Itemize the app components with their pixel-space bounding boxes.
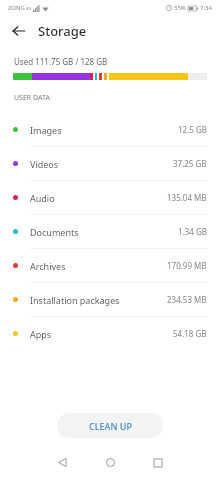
staticText: ZONG xyxy=(8,4,25,12)
button[interactable]: Installation packages xyxy=(0,283,220,316)
staticText: Storage xyxy=(38,22,87,40)
staticText: 1.34 GB xyxy=(178,226,207,237)
staticText: 135.04 MB xyxy=(167,192,207,203)
staticText: 54.18 GB xyxy=(173,328,207,339)
staticText: 234.53 MB xyxy=(167,294,207,305)
button[interactable]: Images xyxy=(0,113,220,146)
button[interactable]: Home xyxy=(93,450,127,475)
button[interactable]: Back xyxy=(45,450,79,475)
button[interactable]: Videos xyxy=(0,147,220,180)
staticText: USER DATA xyxy=(14,93,50,103)
button[interactable]: Documents xyxy=(0,215,220,248)
staticText: 55% xyxy=(174,4,186,12)
staticText: Apps xyxy=(30,328,52,340)
staticText: 170.99 MB xyxy=(167,260,207,271)
staticText: Audio xyxy=(30,192,55,204)
staticText: Archives xyxy=(30,260,66,272)
button[interactable]: Recent apps xyxy=(141,450,175,475)
staticText: 7:34 xyxy=(200,4,212,12)
button[interactable]: Archives xyxy=(0,249,220,282)
staticText: 12.5 GB xyxy=(178,124,207,135)
staticText: 37.25 GB xyxy=(173,158,207,169)
staticText: Used 111.75 GB / 128 GB xyxy=(14,56,108,67)
staticText: Documents xyxy=(30,226,79,238)
staticText: Installation packages xyxy=(30,294,120,306)
staticText: CLEAN UP xyxy=(89,420,132,432)
staticText: Images xyxy=(30,124,62,136)
button[interactable]: Apps xyxy=(0,317,220,350)
button[interactable]: Audio xyxy=(0,181,220,214)
staticText: 4G xyxy=(26,6,32,11)
button[interactable]: CLEAN UP xyxy=(57,413,163,438)
staticText: Videos xyxy=(30,158,59,170)
button[interactable]: Back xyxy=(6,18,32,44)
